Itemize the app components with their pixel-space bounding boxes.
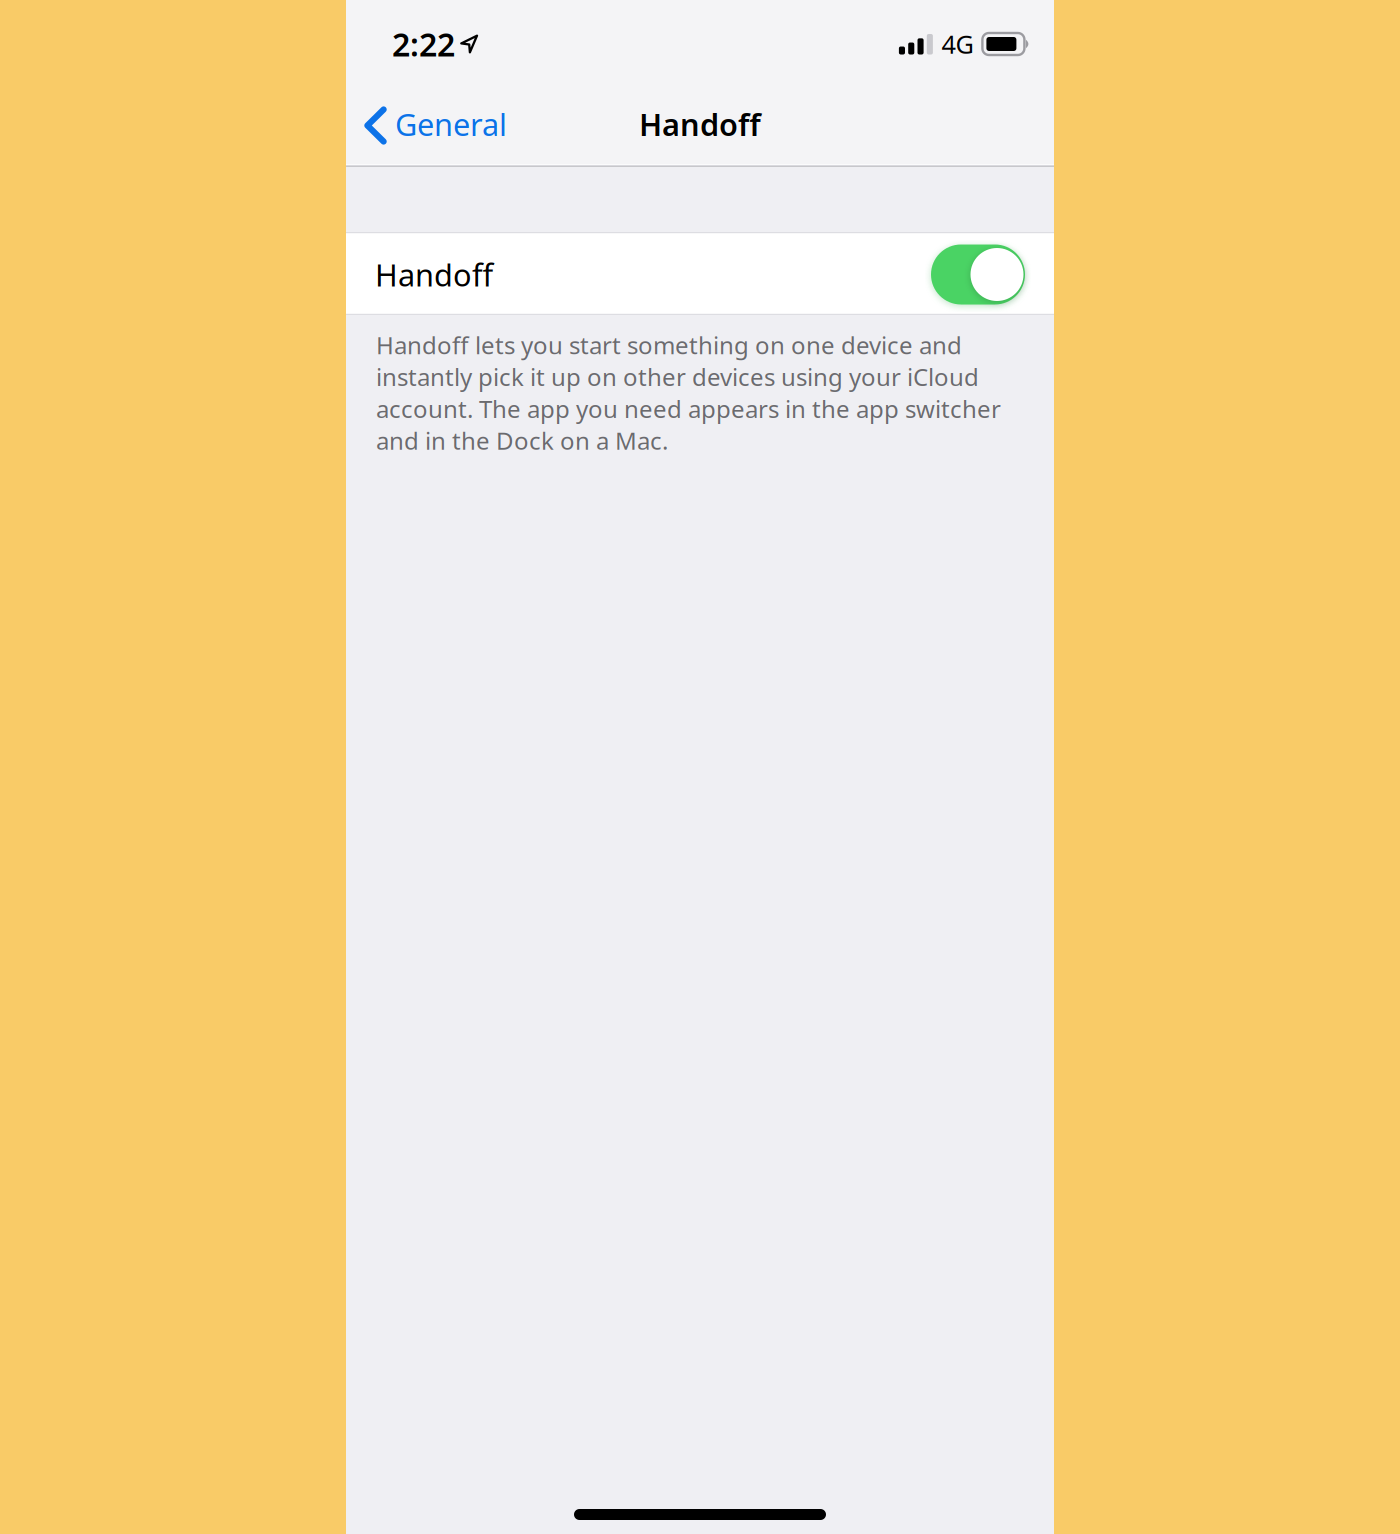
button[interactable]: Handoff [346,232,1054,315]
staticText: General [395,104,507,144]
button[interactable]: General [346,94,521,157]
staticText: 2:22 [392,23,455,65]
staticText: Handoff [639,104,761,144]
staticText: Handoff [375,254,493,295]
staticText: 4G [941,27,973,61]
staticText: Handoff lets you start something on one … [376,329,1001,456]
